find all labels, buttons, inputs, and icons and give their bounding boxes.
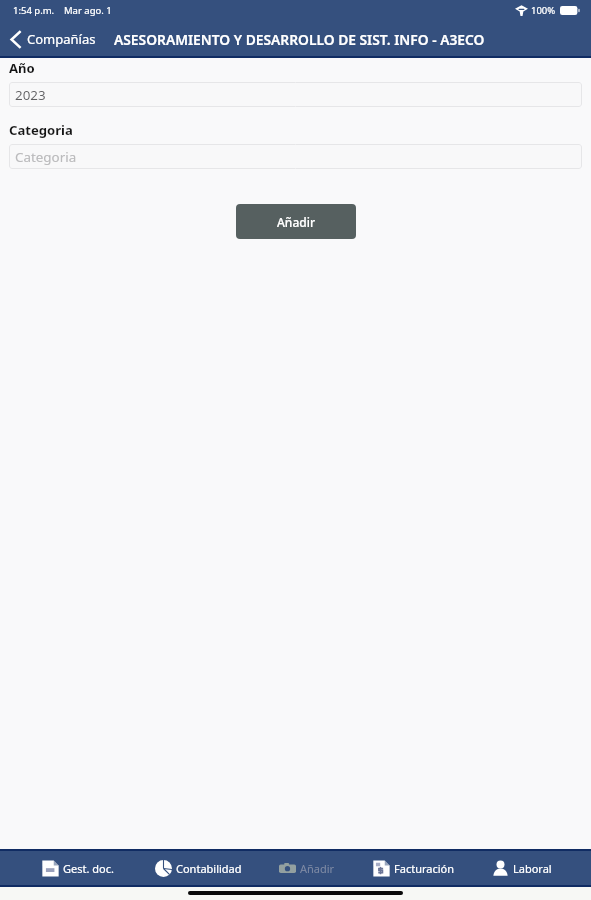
staticText: Añadir: [300, 861, 335, 876]
button[interactable]: Facturación: [374, 851, 452, 885]
staticText: Contabilidad: [176, 861, 242, 876]
button[interactable]: Laboral: [494, 851, 550, 885]
staticText: Categoria: [9, 121, 73, 139]
staticText: Laboral: [513, 861, 552, 876]
staticText: 100%: [531, 4, 556, 17]
button[interactable]: Gest. doc.: [41, 851, 114, 885]
button[interactable]: 2023: [9, 82, 582, 107]
staticText: Añadir: [277, 214, 316, 230]
staticText: 1:54 p.m.: [13, 4, 55, 17]
staticText: Mar ago. 1: [64, 4, 112, 17]
staticText: Año: [9, 59, 35, 77]
staticText: Facturación: [394, 861, 454, 876]
staticText: ASESORAMIENTO Y DESARROLLO DE SIST. INFO…: [114, 30, 485, 49]
button[interactable]: Categoria: [9, 144, 582, 169]
button[interactable]: Añadir: [281, 851, 333, 885]
button[interactable]: Contabilidad: [156, 851, 240, 885]
staticText: Gest. doc.: [63, 861, 114, 876]
staticText: 2023: [15, 86, 46, 104]
staticText: Compañías: [27, 30, 96, 48]
button[interactable]: Compañías: [0, 22, 114, 56]
button[interactable]: Añadir: [236, 204, 356, 239]
staticText: Categoria: [15, 148, 77, 166]
